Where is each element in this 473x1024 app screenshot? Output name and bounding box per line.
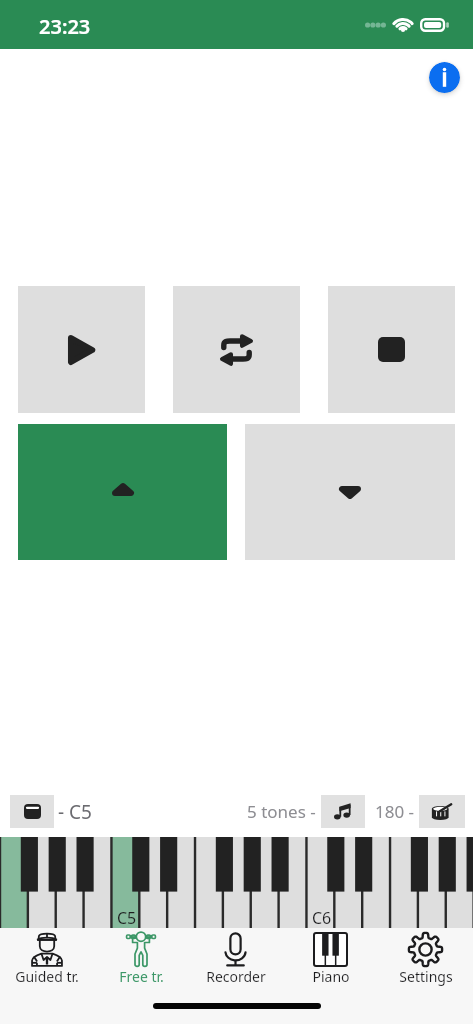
staticText: C6	[312, 907, 332, 929]
staticText: Recorder	[206, 967, 266, 986]
button[interactable]: Info	[429, 62, 460, 93]
staticText: Settings	[399, 967, 453, 986]
button[interactable]: Tones	[321, 795, 365, 828]
staticText: Guided tr.	[15, 967, 79, 986]
button[interactable]: Guided tr.	[0, 928, 94, 995]
button[interactable]: Play	[18, 286, 145, 413]
button[interactable]: Free tr.	[94, 928, 188, 995]
staticText: Piano	[312, 967, 350, 986]
button[interactable]: Settings	[378, 928, 473, 995]
button[interactable]: Stop	[328, 286, 455, 413]
staticText: C5	[117, 907, 137, 929]
staticText: 23:23	[39, 13, 91, 40]
button[interactable]: Piano	[283, 928, 378, 995]
button[interactable]: Octave down	[245, 424, 455, 560]
button[interactable]: Tempo	[419, 795, 465, 828]
button[interactable]: Recorder	[188, 928, 283, 995]
button[interactable]: Keyboard	[10, 795, 54, 828]
button[interactable]: Octave up	[18, 424, 227, 560]
staticText: - C5	[58, 799, 92, 825]
staticText: Free tr.	[119, 967, 164, 986]
staticText: 5 tones -	[247, 800, 321, 823]
staticText: 180 -	[375, 800, 419, 823]
button[interactable]: Repeat	[173, 286, 300, 413]
